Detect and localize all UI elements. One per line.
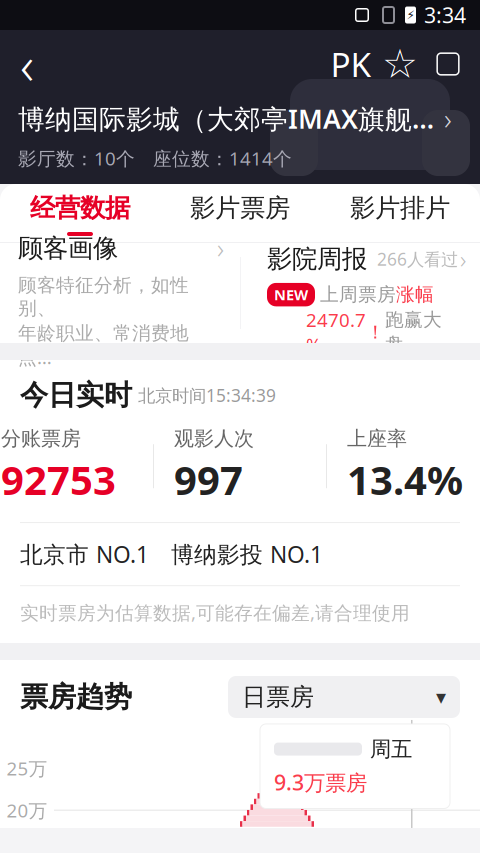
staticText: NEW bbox=[274, 285, 308, 304]
staticText: ⚡︎ bbox=[406, 8, 414, 22]
staticText: › bbox=[217, 230, 224, 266]
staticText: 顾客画像 bbox=[18, 233, 118, 264]
staticText: › bbox=[460, 243, 466, 275]
staticText: 3:34 bbox=[424, 1, 466, 29]
button[interactable]: 经营数据 bbox=[0, 184, 160, 242]
staticText: 实时票房为估算数据,可能存在偏差,请合理使用 bbox=[20, 600, 410, 625]
staticText: 涨幅 bbox=[396, 283, 434, 306]
button[interactable]: Favorite bbox=[376, 38, 424, 90]
staticText: 周五 bbox=[370, 736, 412, 762]
button[interactable]: Back bbox=[0, 38, 54, 90]
staticText: › bbox=[444, 99, 452, 138]
staticText: 影厅数：10个 bbox=[18, 146, 135, 171]
staticText: 9.3万票房 bbox=[274, 768, 367, 796]
button[interactable]: Share bbox=[424, 38, 472, 90]
staticText: ！ bbox=[366, 321, 385, 344]
staticText: PK bbox=[330, 42, 371, 86]
staticText: 观影人次 bbox=[174, 426, 254, 451]
staticText: ☆ bbox=[382, 41, 418, 87]
staticText: 座位数：1414个 bbox=[153, 146, 292, 171]
staticText: 博纳国际影城（大郊亭IMAX旗舰… bbox=[18, 101, 434, 136]
staticText: 跑赢大盘… bbox=[385, 308, 442, 356]
button[interactable]: 影院周报 bbox=[241, 243, 480, 343]
button[interactable]: 影片排片 bbox=[320, 184, 480, 242]
staticText: 票房趋势 bbox=[20, 680, 132, 714]
staticText: 影片票房 bbox=[190, 192, 290, 223]
staticText: 北京市 NO.1 bbox=[20, 539, 149, 569]
staticText: 影片排片 bbox=[350, 192, 450, 223]
staticText: 上周票房 bbox=[320, 283, 396, 306]
staticText: 影院周报 bbox=[267, 243, 367, 274]
staticText: 北京时间15:34:39 bbox=[138, 384, 276, 407]
staticText: 92753 bbox=[1, 453, 116, 506]
staticText: 日票房 bbox=[242, 682, 314, 712]
staticText: 25万 bbox=[6, 756, 47, 781]
staticText: ‹ bbox=[20, 29, 34, 99]
staticText: 997 bbox=[174, 453, 243, 506]
button[interactable]: 顾客画像 bbox=[0, 243, 240, 343]
staticText: 2470.7% bbox=[306, 307, 366, 357]
staticText: 266人看过 bbox=[377, 247, 458, 270]
button[interactable]: 日票房 bbox=[228, 676, 460, 718]
staticText: 顾客特征分析，如性别、 bbox=[18, 274, 189, 320]
staticText: 20万 bbox=[6, 798, 47, 823]
staticText: 年龄职业、常消费地点… bbox=[18, 322, 189, 369]
staticText: 上座率 bbox=[347, 426, 407, 451]
button[interactable]: 博纳国际影城（大郊亭IMAX旗舰… bbox=[0, 90, 480, 138]
staticText: 博纳影投 NO.1 bbox=[171, 539, 323, 569]
staticText: 经营数据 bbox=[30, 192, 130, 223]
staticText: 13.4% bbox=[347, 453, 463, 506]
staticText: 分账票房 bbox=[1, 426, 81, 451]
staticText: ▾ bbox=[436, 686, 446, 708]
button[interactable]: 影片票房 bbox=[160, 184, 320, 242]
button[interactable]: PK bbox=[326, 38, 376, 90]
staticText: 今日实时 bbox=[20, 378, 132, 412]
